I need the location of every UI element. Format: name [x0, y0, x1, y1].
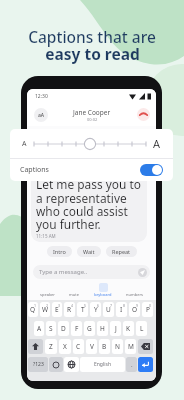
staticText: N [115, 342, 120, 351]
staticText: E [55, 305, 59, 314]
button[interactable]: Backspace [138, 339, 153, 354]
button[interactable]: Emoji [49, 357, 63, 372]
button[interactable]: Type a message.. [33, 265, 150, 279]
button[interactable]: End call [137, 108, 150, 121]
staticText: Repeat [112, 248, 131, 255]
button[interactable]: mute [67, 283, 81, 297]
staticText: 4 [71, 303, 74, 308]
button[interactable]: Text size [34, 108, 48, 122]
button[interactable]: Repeat [106, 246, 137, 257]
staticText: Captions that are [28, 26, 156, 47]
staticText: L [140, 324, 144, 333]
staticText: 00:02 [87, 117, 98, 122]
staticText: J [115, 324, 117, 333]
staticText: 9 [136, 303, 139, 308]
button[interactable]: Shift [28, 339, 43, 354]
button[interactable]: J [110, 321, 121, 336]
button[interactable]: T [77, 302, 88, 317]
staticText: K [126, 324, 131, 333]
staticText: easy to read [45, 43, 140, 64]
button[interactable]: W [40, 302, 50, 317]
button[interactable]: M [125, 339, 136, 354]
staticText: G [87, 324, 92, 333]
button[interactable]: B [99, 339, 110, 354]
button[interactable]: Y [90, 302, 101, 317]
button[interactable]: U [103, 302, 114, 317]
staticText: speaker [40, 292, 55, 297]
staticText: Let me pass you to a representative who … [36, 176, 141, 232]
staticText: H [100, 324, 105, 333]
button[interactable]: Language [64, 357, 79, 372]
staticText: Z [49, 342, 53, 351]
staticText: Intro [53, 248, 66, 255]
staticText: 11:15 AM [36, 233, 56, 239]
button[interactable]: K [123, 321, 134, 336]
button[interactable]: F [71, 321, 82, 336]
button[interactable]: E [52, 302, 62, 317]
staticText: . [131, 361, 133, 369]
button[interactable]: D [58, 321, 69, 336]
staticText: Wait [83, 248, 95, 255]
staticText: U [106, 305, 111, 314]
button[interactable]: English [80, 357, 125, 372]
button[interactable]: V [86, 339, 97, 354]
staticText: Type a message.. [39, 268, 88, 276]
staticText: 5 [84, 303, 87, 308]
button[interactable]: Z [45, 339, 57, 354]
staticText: S [49, 324, 53, 333]
staticText: ?123 [33, 361, 44, 368]
staticText: 1 [34, 303, 37, 308]
button[interactable]: H [97, 321, 108, 336]
button[interactable]: N [112, 339, 123, 354]
staticText: T [81, 305, 85, 314]
staticText: 7 [110, 303, 113, 308]
button[interactable]: numbers [124, 283, 145, 297]
staticText: 6 [97, 303, 100, 308]
staticText: F [75, 324, 79, 333]
staticText: English [94, 361, 112, 368]
button[interactable]: Wait [77, 246, 101, 257]
staticText: 2 [46, 303, 49, 308]
button[interactable]: O [129, 302, 140, 317]
button[interactable]: I [116, 302, 127, 317]
staticText: V [90, 342, 94, 351]
staticText: X [63, 342, 67, 351]
button[interactable]: L [136, 321, 147, 336]
staticText: P [146, 305, 150, 314]
staticText: 3 [58, 303, 61, 308]
staticText: Captions [20, 165, 49, 175]
staticText: R [67, 305, 72, 314]
button[interactable]: . [126, 357, 137, 372]
staticText: 0 [149, 303, 152, 308]
staticText: A [37, 324, 42, 333]
button[interactable]: Intro [47, 246, 72, 257]
staticText: O [132, 305, 138, 314]
button[interactable]: P [142, 302, 153, 317]
staticText: 12:30 [35, 93, 48, 100]
button[interactable]: C [73, 339, 84, 354]
button[interactable]: Q [28, 302, 38, 317]
staticText: aA [38, 112, 45, 119]
button[interactable]: R [64, 302, 75, 317]
button[interactable]: ?123 [28, 357, 48, 372]
staticText: M [128, 342, 134, 351]
button[interactable]: Enter [138, 357, 153, 372]
button[interactable]: A [34, 321, 44, 336]
staticText: mute [69, 292, 79, 297]
staticText: I [120, 305, 123, 314]
staticText: C [76, 342, 81, 351]
staticText: Jane Cooper [73, 108, 111, 117]
staticText: keyboard [94, 292, 112, 297]
staticText: numbers [126, 292, 143, 297]
button[interactable]: S [46, 321, 56, 336]
staticText: Q [30, 305, 36, 314]
button[interactable]: Captions [20, 159, 163, 181]
button[interactable]: speaker [38, 283, 57, 297]
staticText: B [102, 342, 107, 351]
button[interactable]: X [59, 339, 71, 354]
staticText: W [42, 305, 49, 314]
button[interactable]: G [84, 321, 95, 336]
button[interactable]: keyboard [92, 283, 114, 297]
staticText: 8 [123, 303, 126, 308]
staticText: Y [94, 305, 98, 314]
